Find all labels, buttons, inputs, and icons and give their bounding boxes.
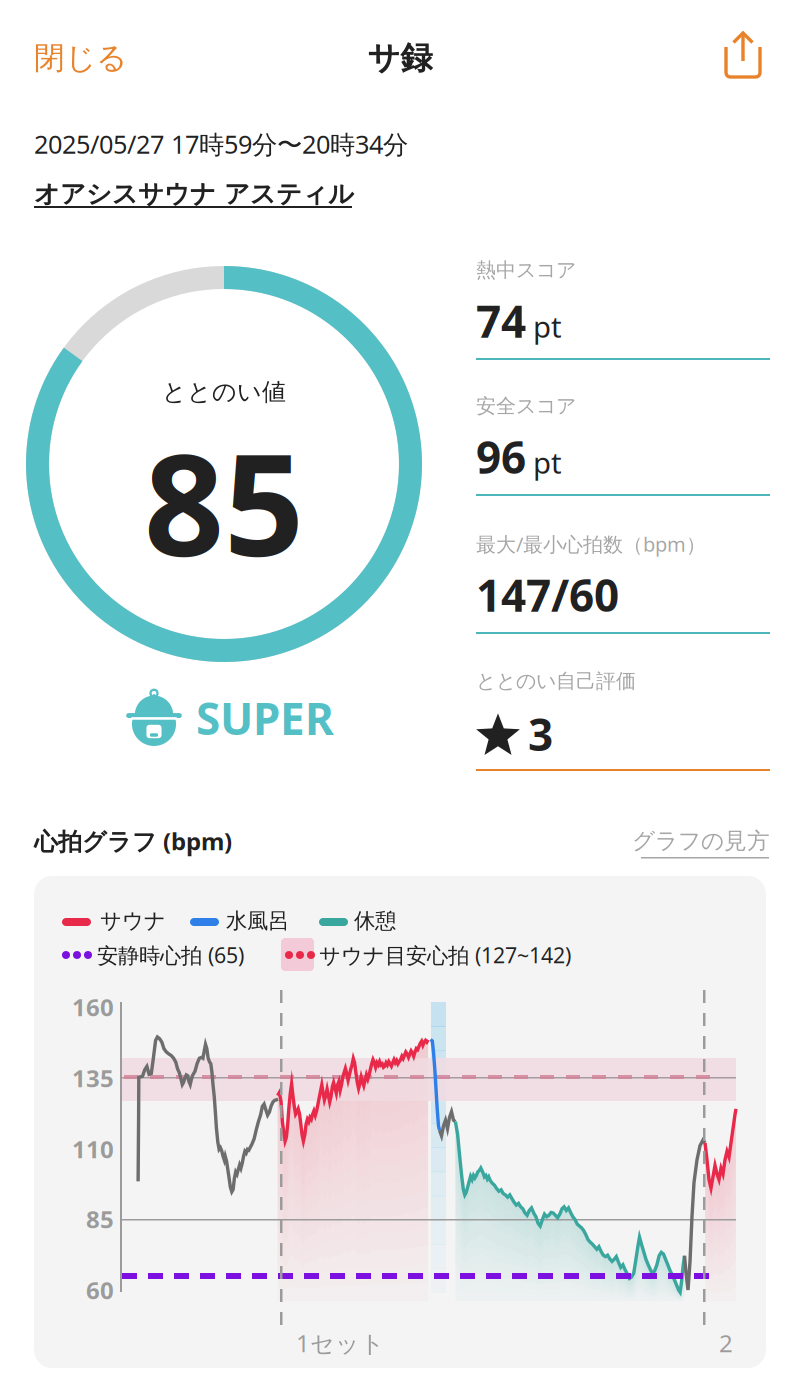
- staticText: 1セット: [296, 1327, 385, 1359]
- staticText: ととのい値: [162, 377, 286, 407]
- staticText: ととのい自己評価: [476, 669, 636, 693]
- button[interactable]: Share: [723, 30, 763, 80]
- button[interactable]: 閉じる: [34, 34, 214, 82]
- button[interactable]: グラフの見方: [600, 824, 770, 858]
- staticText: 96: [476, 428, 526, 486]
- staticText: 135: [72, 1062, 114, 1094]
- staticText: 2025/05/27 17時59分〜20時34分: [34, 127, 408, 161]
- staticText: 147/60: [476, 566, 619, 624]
- staticText: グラフの見方: [632, 827, 770, 855]
- staticText: 3: [528, 705, 553, 763]
- staticText: サ録: [367, 38, 432, 78]
- staticText: pt: [533, 443, 562, 482]
- staticText: 85: [144, 409, 304, 595]
- staticText: サウナ目安心拍 (127~142): [319, 941, 571, 969]
- staticText: 2: [719, 1327, 733, 1359]
- staticText: 110: [72, 1133, 114, 1165]
- staticText: pt: [533, 307, 562, 346]
- staticText: 水風呂: [226, 908, 289, 934]
- staticText: 安静時心拍 (65): [97, 941, 244, 969]
- staticText: 85: [86, 1203, 114, 1235]
- staticText: 安全スコア: [476, 394, 576, 418]
- staticText: 休憩: [354, 908, 396, 934]
- staticText: 心拍グラフ (bpm): [34, 825, 232, 857]
- staticText: 熱中スコア: [476, 258, 576, 282]
- staticText: SUPER: [196, 689, 334, 747]
- staticText: 160: [72, 991, 114, 1023]
- staticText: サウナ: [100, 908, 166, 934]
- staticText: 60: [86, 1274, 114, 1306]
- staticText: 閉じる: [34, 39, 127, 77]
- staticText: オアシスサウナ アスティル: [34, 178, 354, 209]
- staticText: 最大/最小心拍数（bpm）: [476, 531, 706, 557]
- staticText: 74: [476, 292, 526, 350]
